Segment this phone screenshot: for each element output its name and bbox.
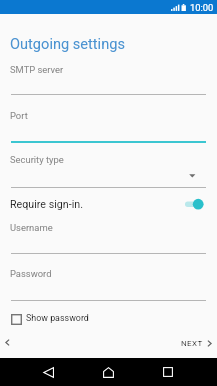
other: Require sign-in toggle [183, 197, 205, 211]
staticText: NEXT [181, 339, 203, 348]
staticText: 10:00 [190, 2, 214, 13]
staticText: Port [10, 110, 28, 121]
staticText: Username [10, 222, 53, 233]
button[interactable]: NEXT [176, 332, 203, 354]
button[interactable]: Recent apps [154, 358, 182, 386]
button[interactable]: Previous [0, 332, 17, 354]
staticText: Password [10, 268, 52, 279]
button[interactable]: Show password [0, 310, 217, 328]
button[interactable]: Require sign-in. [0, 193, 217, 215]
staticText: Show password [26, 313, 89, 323]
button[interactable]: Back [34, 358, 62, 386]
staticText: Outgoing settings [10, 35, 125, 52]
button[interactable]: Home [94, 358, 122, 386]
staticText: SMTP server [10, 64, 64, 75]
staticText: Security type [10, 154, 64, 165]
staticText: Require sign-in. [10, 198, 83, 211]
